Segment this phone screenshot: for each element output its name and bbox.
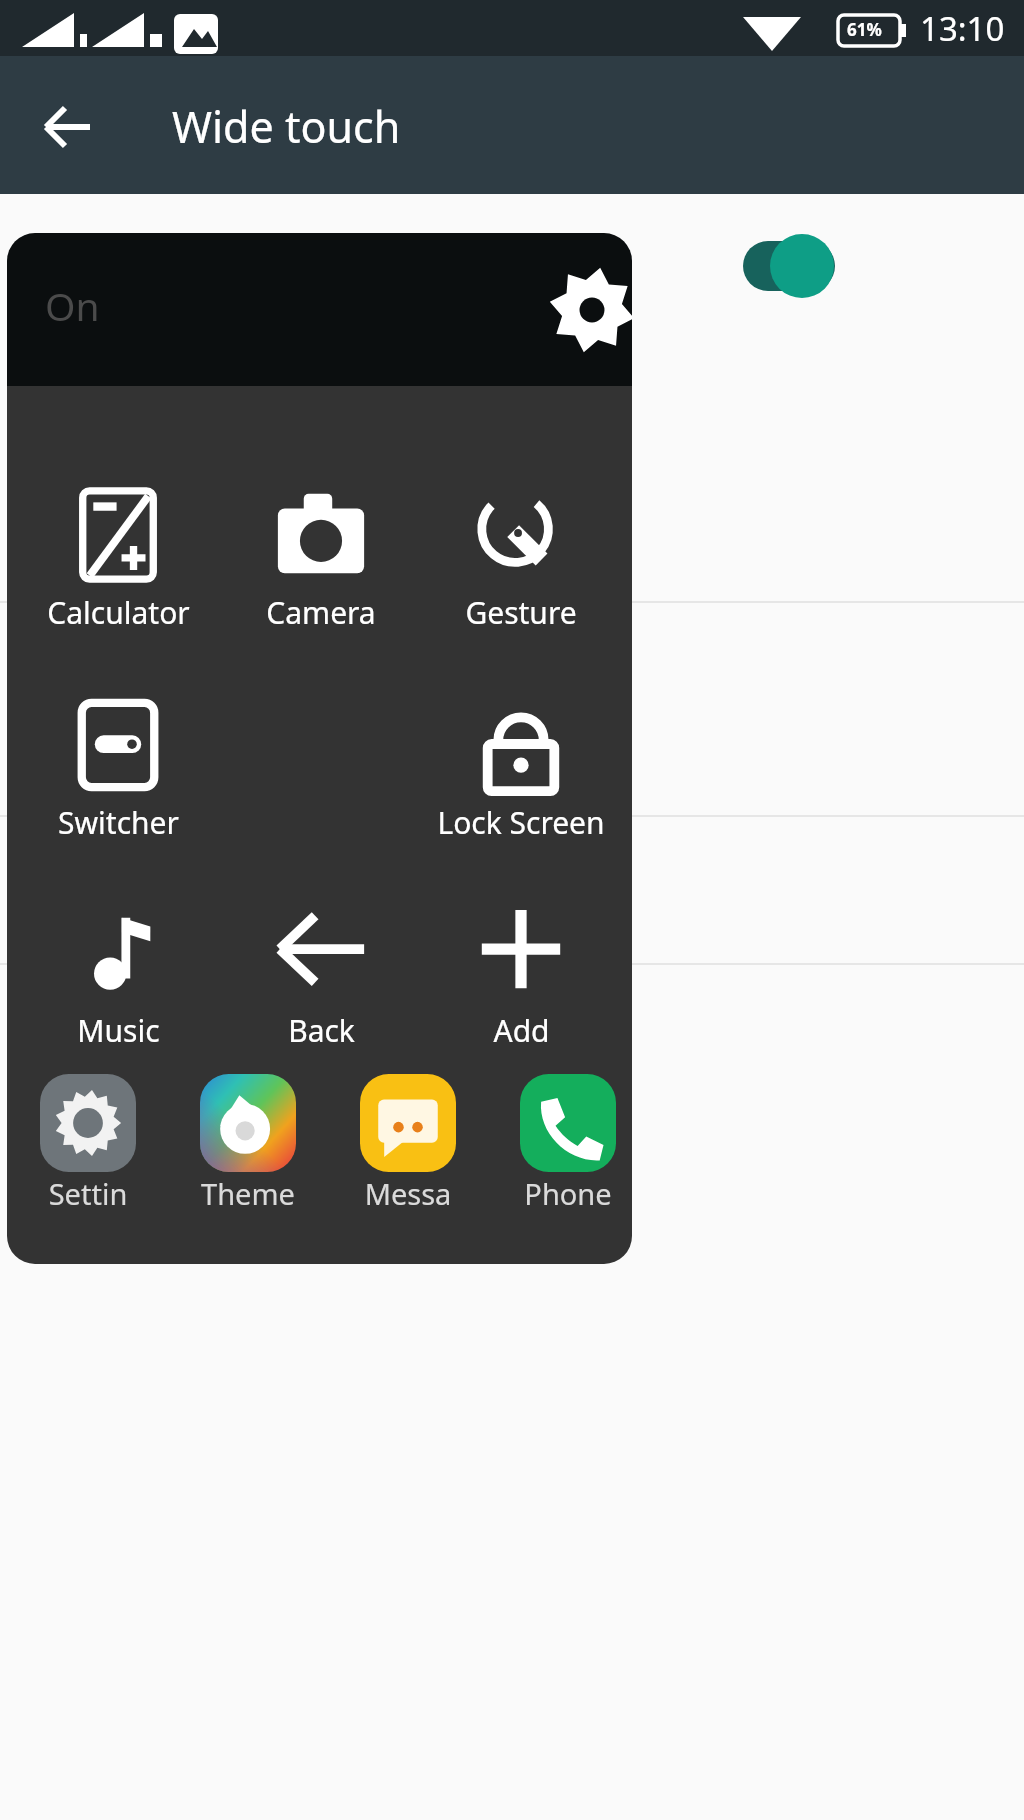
button[interactable]: Theme C... <box>200 1074 296 1234</box>
staticText: Customize gestures for floating button <box>44 739 518 774</box>
button[interactable]: Messaging <box>360 1074 456 1234</box>
button[interactable]: Music <box>29 904 207 1069</box>
staticText: Add <box>493 1010 550 1051</box>
button[interactable]: Gesture set... <box>432 486 610 651</box>
button[interactable]: Phone <box>520 1074 616 1234</box>
staticText: 61% <box>847 18 882 41</box>
staticText: Music <box>77 1010 160 1051</box>
button[interactable]: Switcher <box>29 696 207 861</box>
button[interactable]: Camera <box>232 486 410 651</box>
button[interactable]: Wide touch toggle <box>735 228 855 304</box>
staticText: Floating button settings <box>44 381 393 423</box>
staticText: Switcher <box>58 802 179 843</box>
button[interactable]: Settings <box>40 1074 136 1234</box>
button[interactable]: Back <box>32 91 104 163</box>
button[interactable]: Add <box>432 904 610 1069</box>
staticText: Wide touch <box>172 97 401 156</box>
button[interactable]: Calculator <box>29 486 207 651</box>
staticText: Settings <box>40 1174 136 1213</box>
staticText: Calculator <box>47 592 190 633</box>
staticText: On <box>45 279 100 332</box>
button[interactable]: Floating button custom gesture settings <box>0 603 1024 815</box>
staticText: Theme C... <box>200 1174 296 1213</box>
button[interactable]: Back <box>232 904 410 1069</box>
staticText: Back <box>288 1010 355 1051</box>
staticText: Phone <box>524 1174 612 1213</box>
staticText: Messaging <box>360 1174 456 1213</box>
staticText: Floating button custom gesture settings <box>44 674 628 716</box>
staticText: Gesture set... <box>432 592 610 633</box>
staticText: Camera <box>266 592 376 633</box>
button[interactable]: Lock Screen <box>432 696 610 861</box>
button[interactable]: Floating button settings <box>0 194 1024 601</box>
button[interactable]: Settings <box>539 257 632 363</box>
staticText: Lock Screen <box>437 802 605 843</box>
staticText: 13:10 <box>920 6 1005 51</box>
button[interactable]: Help Animation <box>0 817 1024 963</box>
button[interactable] <box>0 965 1024 1105</box>
